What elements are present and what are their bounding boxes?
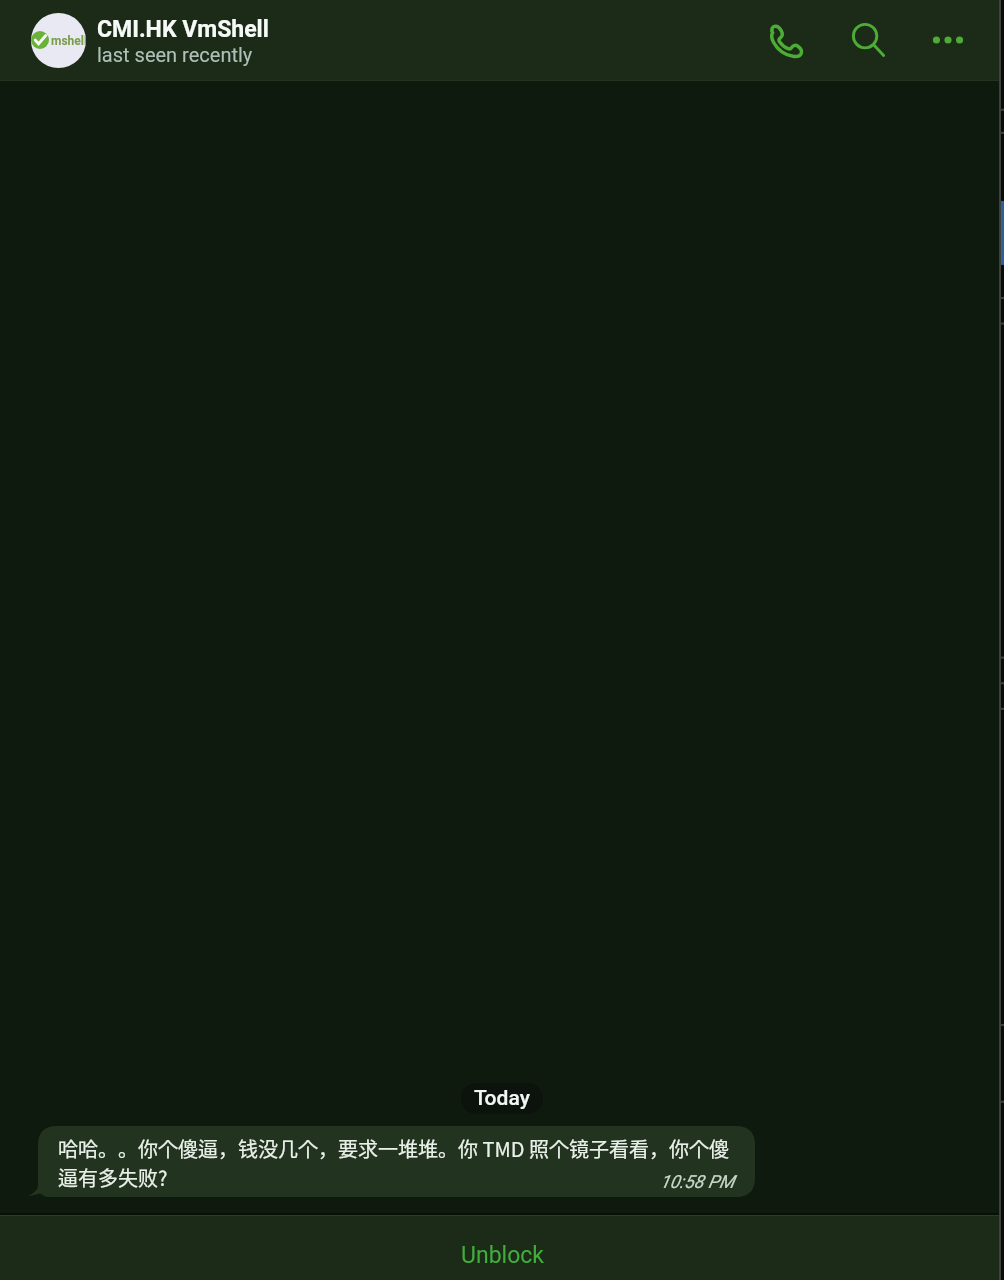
staticText: 哈哈。。你个傻逼，钱没几个，要求一堆堆。你 TMD 照个镜子看看，你个傻逼有多失… [58,1134,735,1192]
staticText: Unblock [461,1242,544,1269]
button[interactable]: Search [830,0,908,80]
button[interactable]: 哈哈。。你个傻逼，钱没几个，要求一堆堆。你 TMD 照个镜子看看，你个傻逼有多失… [28,1126,755,1197]
button[interactable]: Today [461,1083,543,1114]
staticText: mshell [51,34,86,48]
staticText: 10:58 PM [660,1171,735,1192]
button[interactable]: Profile photo [31,13,86,68]
staticText: last seen recently [97,43,253,66]
button[interactable]: More options [908,0,988,80]
button[interactable]: Unblock [0,1216,1004,1280]
staticText: Today [474,1086,530,1111]
button[interactable]: Call [742,0,830,80]
staticText: CMI.HK VmShell [97,16,269,43]
